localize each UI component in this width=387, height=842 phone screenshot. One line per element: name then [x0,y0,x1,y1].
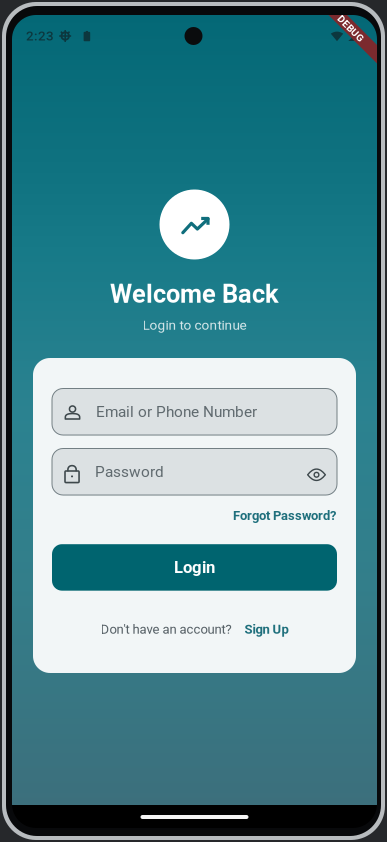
staticText: Login to continue [142,317,246,333]
staticText: Welcome Back [110,279,279,309]
staticText: Forgot Password? [233,508,336,523]
button[interactable]: Sign Up [244,622,288,637]
button[interactable]: Forgot Password? [232,505,337,526]
staticText: Sign Up [244,622,288,637]
staticText: Password [95,463,164,481]
button[interactable]: Show password [304,463,329,481]
staticText: 2:23 [26,28,54,44]
staticText: Login [174,558,215,577]
staticText: Don't have an account? [100,622,231,637]
staticText: DEBUG [334,23,367,34]
staticText: Email or Phone Number [96,403,257,421]
button[interactable]: Login [52,544,337,591]
